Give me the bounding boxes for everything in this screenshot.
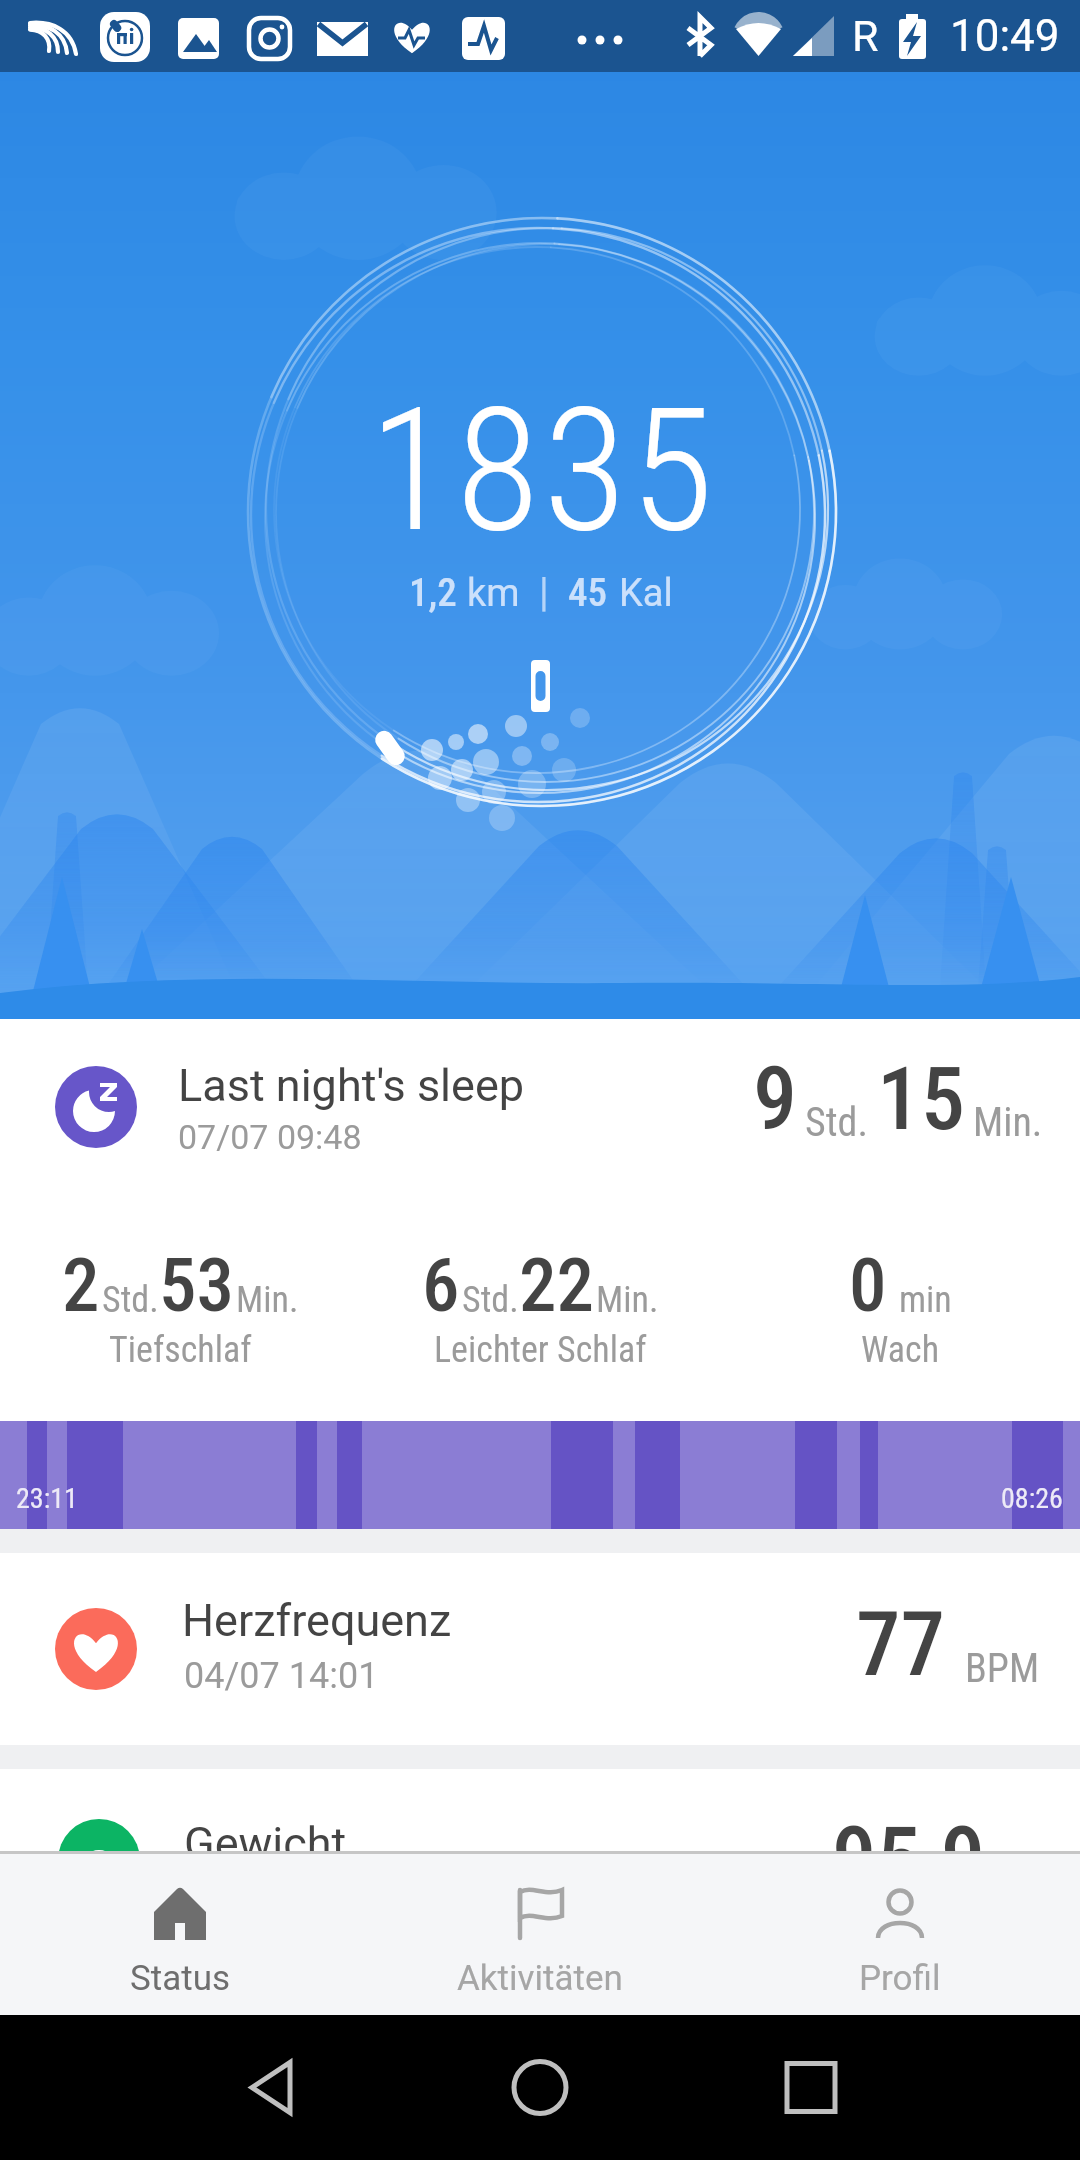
- staticText: Min.: [973, 1099, 1043, 1146]
- button[interactable]: Gewicht: [0, 1769, 1080, 1851]
- staticText: |: [539, 569, 549, 616]
- staticText: 23:11: [16, 1482, 78, 1515]
- staticText: 22: [519, 1241, 594, 1329]
- staticText: 15: [877, 1047, 965, 1150]
- button[interactable]: Last night's sleep: [0, 1019, 1080, 1421]
- staticText: 1835: [369, 370, 718, 570]
- staticText: 77: [856, 1592, 945, 1696]
- staticText: 0: [849, 1241, 887, 1329]
- staticText: Min.: [596, 1279, 659, 1321]
- staticText: Profil: [859, 1958, 941, 1999]
- staticText: Std.: [102, 1279, 159, 1321]
- button[interactable]: Herzfrequenz: [0, 1553, 1080, 1745]
- staticText: 53: [159, 1241, 234, 1329]
- staticText: Status: [130, 1958, 231, 1999]
- staticText: 9: [753, 1047, 797, 1150]
- button[interactable]: 23:11: [0, 1421, 1080, 1529]
- staticText: Std.: [805, 1099, 868, 1146]
- staticText: 95,9: [832, 1807, 986, 1889]
- staticText: Wach: [861, 1329, 940, 1371]
- staticText: min: [899, 1279, 952, 1321]
- staticText: 07/07 09:48: [178, 1117, 362, 1157]
- staticText: 08:26: [1001, 1482, 1063, 1515]
- staticText: 10:49: [950, 10, 1060, 62]
- button[interactable]: Status: [0, 1851, 360, 2015]
- staticText: Tiefschlaf: [109, 1329, 252, 1371]
- staticText: Std.: [462, 1279, 519, 1321]
- staticText: 6: [422, 1241, 460, 1329]
- staticText: km: [467, 571, 520, 616]
- staticText: Leichter Schlaf: [434, 1329, 647, 1371]
- other: Profil: [872, 1886, 928, 1942]
- staticText: Kal: [619, 571, 673, 616]
- other: Status: [152, 1886, 208, 1942]
- staticText: Aktivitäten: [457, 1958, 623, 1999]
- button[interactable]: Profil: [720, 1851, 1080, 2015]
- staticText: 45: [568, 570, 607, 616]
- staticText: Gewicht: [184, 1817, 347, 1870]
- staticText: Min.: [236, 1279, 299, 1321]
- staticText: 04/07 14:01: [184, 1655, 379, 1697]
- staticText: Herzfrequenz: [182, 1594, 452, 1647]
- staticText: 2: [62, 1241, 100, 1329]
- other: Aktivitäten: [512, 1886, 568, 1942]
- staticText: R: [852, 11, 879, 61]
- staticText: 1,2: [409, 570, 457, 616]
- button[interactable]: Aktivitäten: [360, 1851, 720, 2015]
- staticText: Last night's sleep: [178, 1059, 525, 1112]
- staticText: BPM: [965, 1645, 1040, 1692]
